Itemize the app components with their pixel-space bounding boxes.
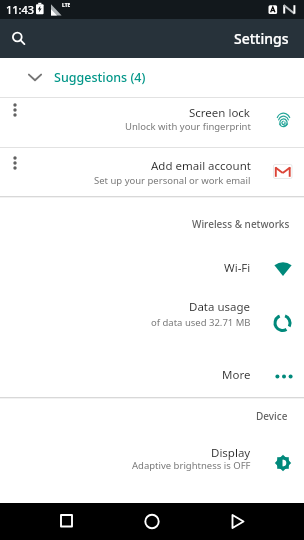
staticText: Display xyxy=(211,445,251,461)
staticText: Wireless & networks xyxy=(192,217,290,231)
staticText: Add email account xyxy=(151,158,251,174)
staticText: Screen lock xyxy=(189,105,251,121)
button[interactable] xyxy=(0,20,38,58)
button[interactable] xyxy=(0,351,304,397)
staticText: Adaptive brightness is OFF xyxy=(132,459,251,472)
button[interactable] xyxy=(0,58,304,97)
staticText: Suggestions (4) xyxy=(54,69,146,86)
staticText: Settings xyxy=(234,29,289,48)
staticText: Data usage xyxy=(189,299,251,315)
staticText: Unlock with your fingerprint xyxy=(125,120,251,133)
button[interactable] xyxy=(0,97,304,147)
button[interactable] xyxy=(0,293,304,351)
staticText: of data used 32.71 MB xyxy=(151,316,251,329)
button[interactable] xyxy=(0,147,304,196)
staticText: Set up your personal or work email xyxy=(94,174,251,187)
staticText: More xyxy=(222,367,251,383)
button[interactable] xyxy=(102,503,203,540)
button[interactable] xyxy=(203,503,304,540)
staticText: Device xyxy=(256,409,288,423)
staticText: 11:43 xyxy=(6,2,35,17)
button[interactable] xyxy=(0,503,102,540)
button[interactable] xyxy=(0,432,304,492)
button[interactable] xyxy=(0,245,304,293)
staticText: Wi-Fi xyxy=(224,260,251,276)
staticText: LTE xyxy=(62,2,71,9)
